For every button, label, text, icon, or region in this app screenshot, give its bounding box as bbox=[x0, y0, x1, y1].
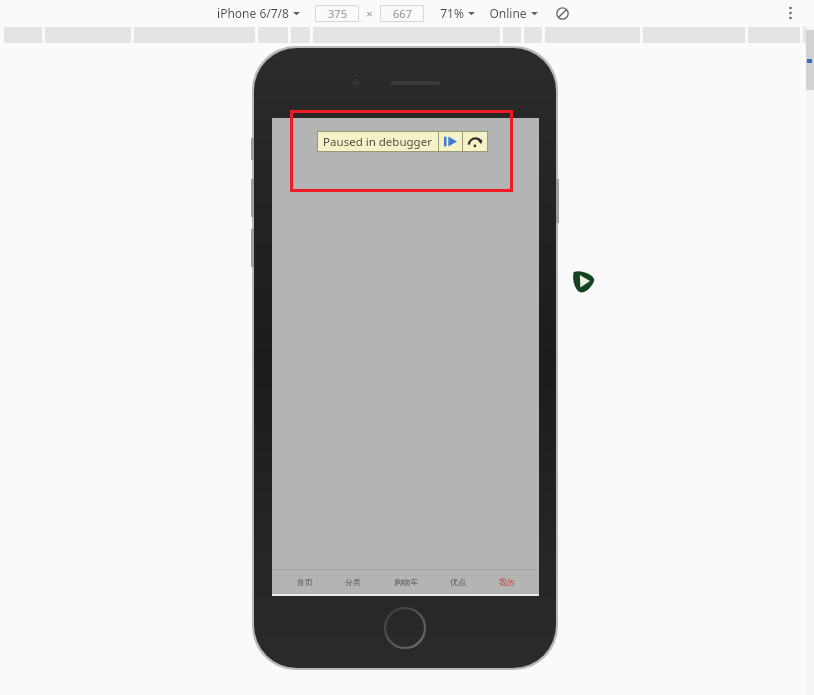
button[interactable]: 购物车 bbox=[386, 574, 426, 590]
button[interactable]: Step over next function call bbox=[463, 131, 488, 152]
staticText: 购物车 bbox=[394, 577, 418, 587]
button[interactable]: 667 bbox=[380, 5, 424, 22]
staticText: 分类 bbox=[345, 577, 361, 587]
button[interactable]: Throttling disabled bbox=[553, 4, 571, 22]
staticText: 首页 bbox=[297, 577, 313, 587]
staticText: iPhone 6/7/8 bbox=[217, 5, 289, 21]
staticText: × bbox=[366, 6, 373, 21]
button[interactable]: 分类 bbox=[337, 574, 369, 590]
button[interactable]: More options bbox=[780, 3, 800, 23]
button[interactable]: Home bbox=[383, 606, 427, 650]
staticText: 71% bbox=[440, 5, 464, 21]
staticText: 优点 bbox=[450, 577, 466, 587]
button[interactable]: 375 bbox=[315, 5, 359, 22]
button[interactable]: Resume script execution bbox=[439, 131, 462, 152]
button[interactable]: Paused in debugger bbox=[317, 131, 438, 152]
staticText: Paused in debugger bbox=[323, 134, 432, 150]
staticText: 我的 bbox=[499, 577, 515, 587]
button[interactable]: 首页 bbox=[289, 574, 321, 590]
button[interactable]: 我的 bbox=[491, 574, 523, 590]
button[interactable]: iPhone 6/7/8 bbox=[215, 5, 302, 21]
staticText: 375 bbox=[328, 6, 347, 21]
staticText: 667 bbox=[393, 6, 412, 21]
button[interactable]: App logo bbox=[569, 266, 599, 296]
button[interactable]: 71% bbox=[438, 5, 477, 21]
button[interactable]: Online bbox=[487, 5, 540, 21]
staticText: Online bbox=[489, 5, 527, 21]
button[interactable]: 优点 bbox=[442, 574, 474, 590]
